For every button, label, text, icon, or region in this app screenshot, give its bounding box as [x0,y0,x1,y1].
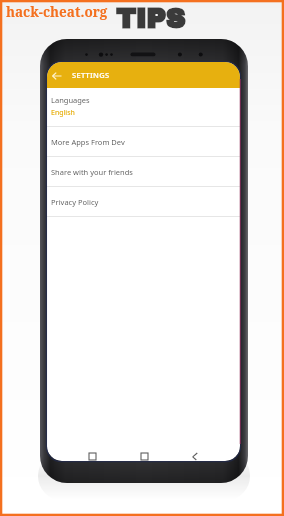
staticText: Privacy Policy [51,197,99,207]
button[interactable]: More Apps From Dev [47,127,240,156]
staticText: More Apps From Dev [51,137,125,147]
staticText: English [51,108,75,118]
button[interactable]: Back [49,68,64,83]
staticText: Share with your friends [51,167,133,177]
button[interactable]: Share with your friends [47,157,240,186]
button[interactable]: Languages [47,88,240,126]
staticText: hack-cheat.org [6,3,108,21]
staticText: SETTINGS [72,70,110,80]
button[interactable]: Home [138,451,150,461]
button[interactable]: Back [189,451,201,461]
button[interactable]: Recents [86,451,98,461]
staticText: Languages [51,95,90,105]
button[interactable]: Back [47,62,240,88]
button[interactable]: Privacy Policy [47,187,240,216]
staticText: TIPS [116,4,185,33]
